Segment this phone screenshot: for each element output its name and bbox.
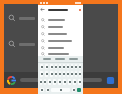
button[interactable] [78, 79, 81, 85]
button[interactable] [50, 64, 53, 69]
button[interactable] [59, 71, 61, 77]
button[interactable]: Search [8, 38, 40, 50]
button[interactable] [51, 88, 70, 92]
button[interactable] [50, 71, 53, 77]
button[interactable] [55, 64, 57, 69]
button[interactable] [38, 23, 83, 30]
button[interactable] [67, 71, 69, 77]
button[interactable] [59, 64, 61, 69]
button[interactable] [53, 79, 56, 85]
button[interactable] [71, 64, 73, 69]
button[interactable] [43, 58, 51, 60]
button[interactable] [75, 71, 77, 77]
button[interactable] [69, 58, 78, 60]
button[interactable] [20, 78, 40, 82]
button[interactable]: Search [8, 12, 40, 24]
button[interactable] [82, 78, 102, 82]
button[interactable]: Send [106, 76, 115, 85]
button[interactable] [71, 71, 73, 77]
button[interactable] [48, 79, 51, 85]
button[interactable] [45, 71, 48, 77]
button[interactable] [68, 79, 71, 85]
button[interactable]: Back [38, 5, 83, 14]
button[interactable] [55, 71, 57, 77]
button[interactable] [40, 71, 43, 77]
button[interactable] [63, 79, 66, 85]
button[interactable] [58, 79, 61, 85]
button[interactable] [38, 51, 83, 56]
button[interactable] [67, 64, 69, 69]
button[interactable] [79, 64, 81, 69]
button[interactable] [38, 37, 83, 44]
button[interactable] [73, 79, 76, 85]
button[interactable] [79, 71, 81, 77]
button[interactable] [40, 88, 44, 92]
other: Back [40, 7, 45, 12]
button[interactable] [63, 71, 65, 77]
button[interactable] [55, 58, 65, 60]
button[interactable] [72, 88, 75, 92]
button[interactable] [44, 79, 46, 85]
button[interactable] [63, 64, 65, 69]
button[interactable]: Search [77, 88, 81, 92]
button[interactable] [40, 79, 42, 85]
button[interactable] [46, 88, 49, 92]
button[interactable] [38, 16, 83, 23]
button[interactable]: Google [7, 76, 16, 85]
button[interactable] [40, 64, 43, 69]
button[interactable] [75, 64, 77, 69]
button[interactable] [38, 44, 83, 51]
button[interactable] [45, 64, 48, 69]
button[interactable] [38, 30, 83, 37]
